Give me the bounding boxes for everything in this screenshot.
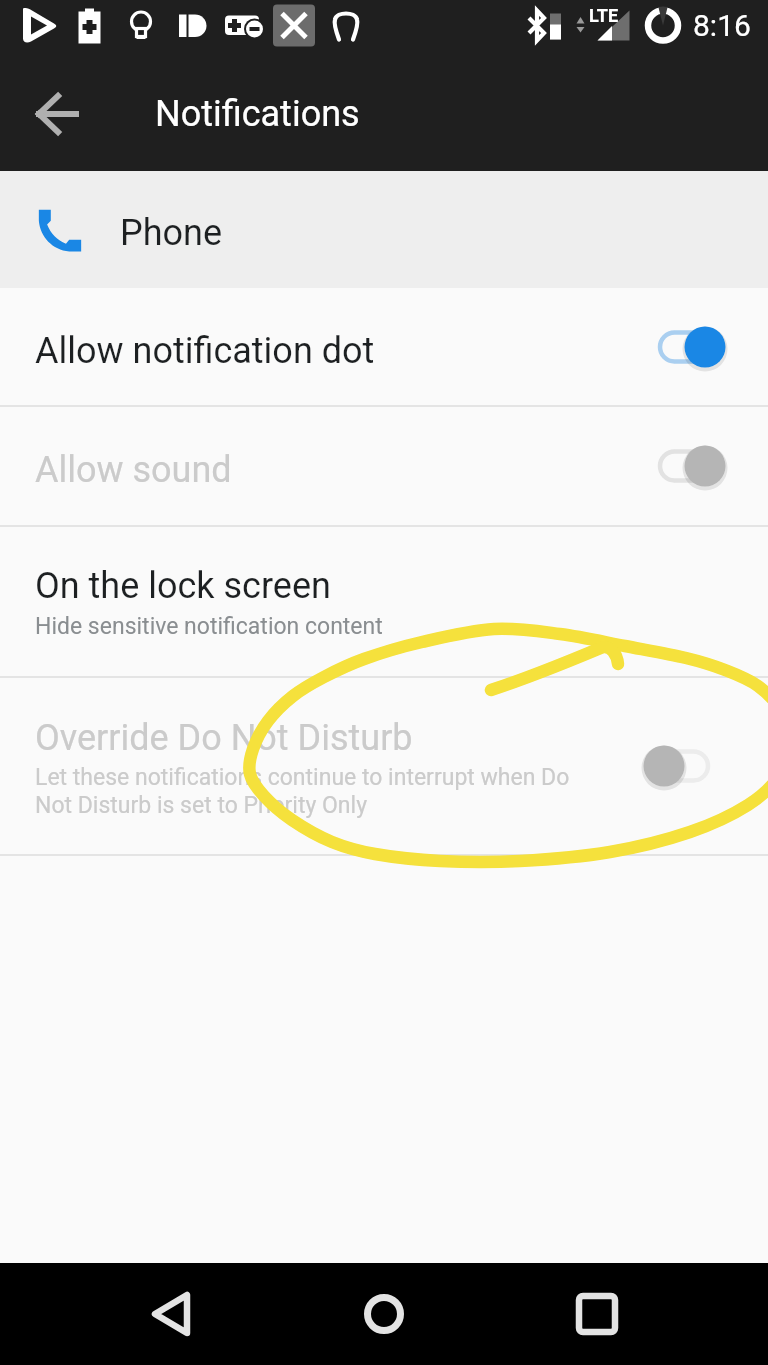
staticText: Override Do Not Disturb bbox=[35, 717, 413, 759]
staticText: Notifications bbox=[155, 93, 360, 135]
button[interactable]: Recents bbox=[517, 1263, 677, 1365]
staticText: On the lock screen bbox=[35, 565, 331, 607]
staticText: Allow sound bbox=[35, 449, 232, 491]
button[interactable]: Back bbox=[91, 1263, 251, 1365]
button[interactable]: Home bbox=[304, 1263, 464, 1365]
staticText: Let these notifications continue to inte… bbox=[35, 764, 570, 819]
button[interactable]: Override Do Not Disturb bbox=[0, 678, 768, 854]
button[interactable]: Toggle bbox=[660, 302, 768, 392]
button[interactable]: On the lock screen bbox=[0, 527, 768, 676]
button[interactable]: Back bbox=[18, 74, 98, 154]
button[interactable]: Phone bbox=[0, 171, 768, 288]
button[interactable]: Toggle bbox=[660, 421, 768, 511]
staticText: Allow notification dot bbox=[35, 330, 375, 372]
staticText: 8:16 bbox=[693, 8, 751, 43]
staticText: Phone bbox=[120, 212, 223, 254]
staticText: Hide sensitive notification content bbox=[35, 613, 383, 640]
staticText: LTE bbox=[589, 5, 619, 26]
button[interactable]: Allow sound bbox=[0, 407, 768, 525]
button[interactable]: Toggle bbox=[660, 721, 768, 811]
button[interactable]: Allow notification dot bbox=[0, 288, 768, 405]
